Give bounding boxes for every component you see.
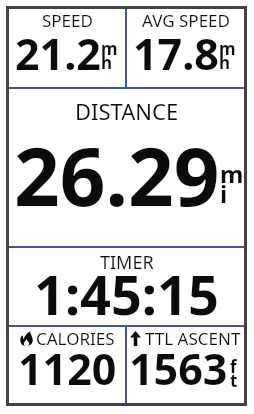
other: Calories: [20, 331, 33, 346]
staticText: 26.29: [14, 120, 220, 229]
staticText: DISTANCE: [75, 96, 179, 126]
staticText: CALORIES: [36, 327, 115, 350]
staticText: f t: [230, 355, 238, 392]
staticText: 1:45:15: [34, 257, 219, 331]
staticText: TIMER: [100, 250, 154, 275]
button[interactable]: SPEED: [9, 9, 125, 87]
staticText: 1120: [18, 339, 117, 398]
button[interactable]: DISTANCE: [9, 89, 244, 246]
staticText: m h: [219, 37, 236, 74]
button[interactable]: AVG SPEED: [127, 9, 244, 87]
button[interactable]: TIMER: [9, 248, 244, 325]
staticText: AVG SPEED: [142, 9, 230, 32]
other: Total ascent: [130, 331, 141, 346]
staticText: 17.8: [133, 24, 219, 83]
staticText: TTL ASCENT: [145, 327, 241, 350]
button[interactable]: Calories: [9, 327, 125, 403]
staticText: m h: [101, 37, 118, 74]
staticText: m i: [220, 157, 244, 210]
staticText: 21.2: [15, 24, 101, 83]
staticText: SPEED: [42, 9, 93, 32]
button[interactable]: Total ascent: [127, 327, 244, 403]
staticText: 1563: [129, 339, 228, 398]
